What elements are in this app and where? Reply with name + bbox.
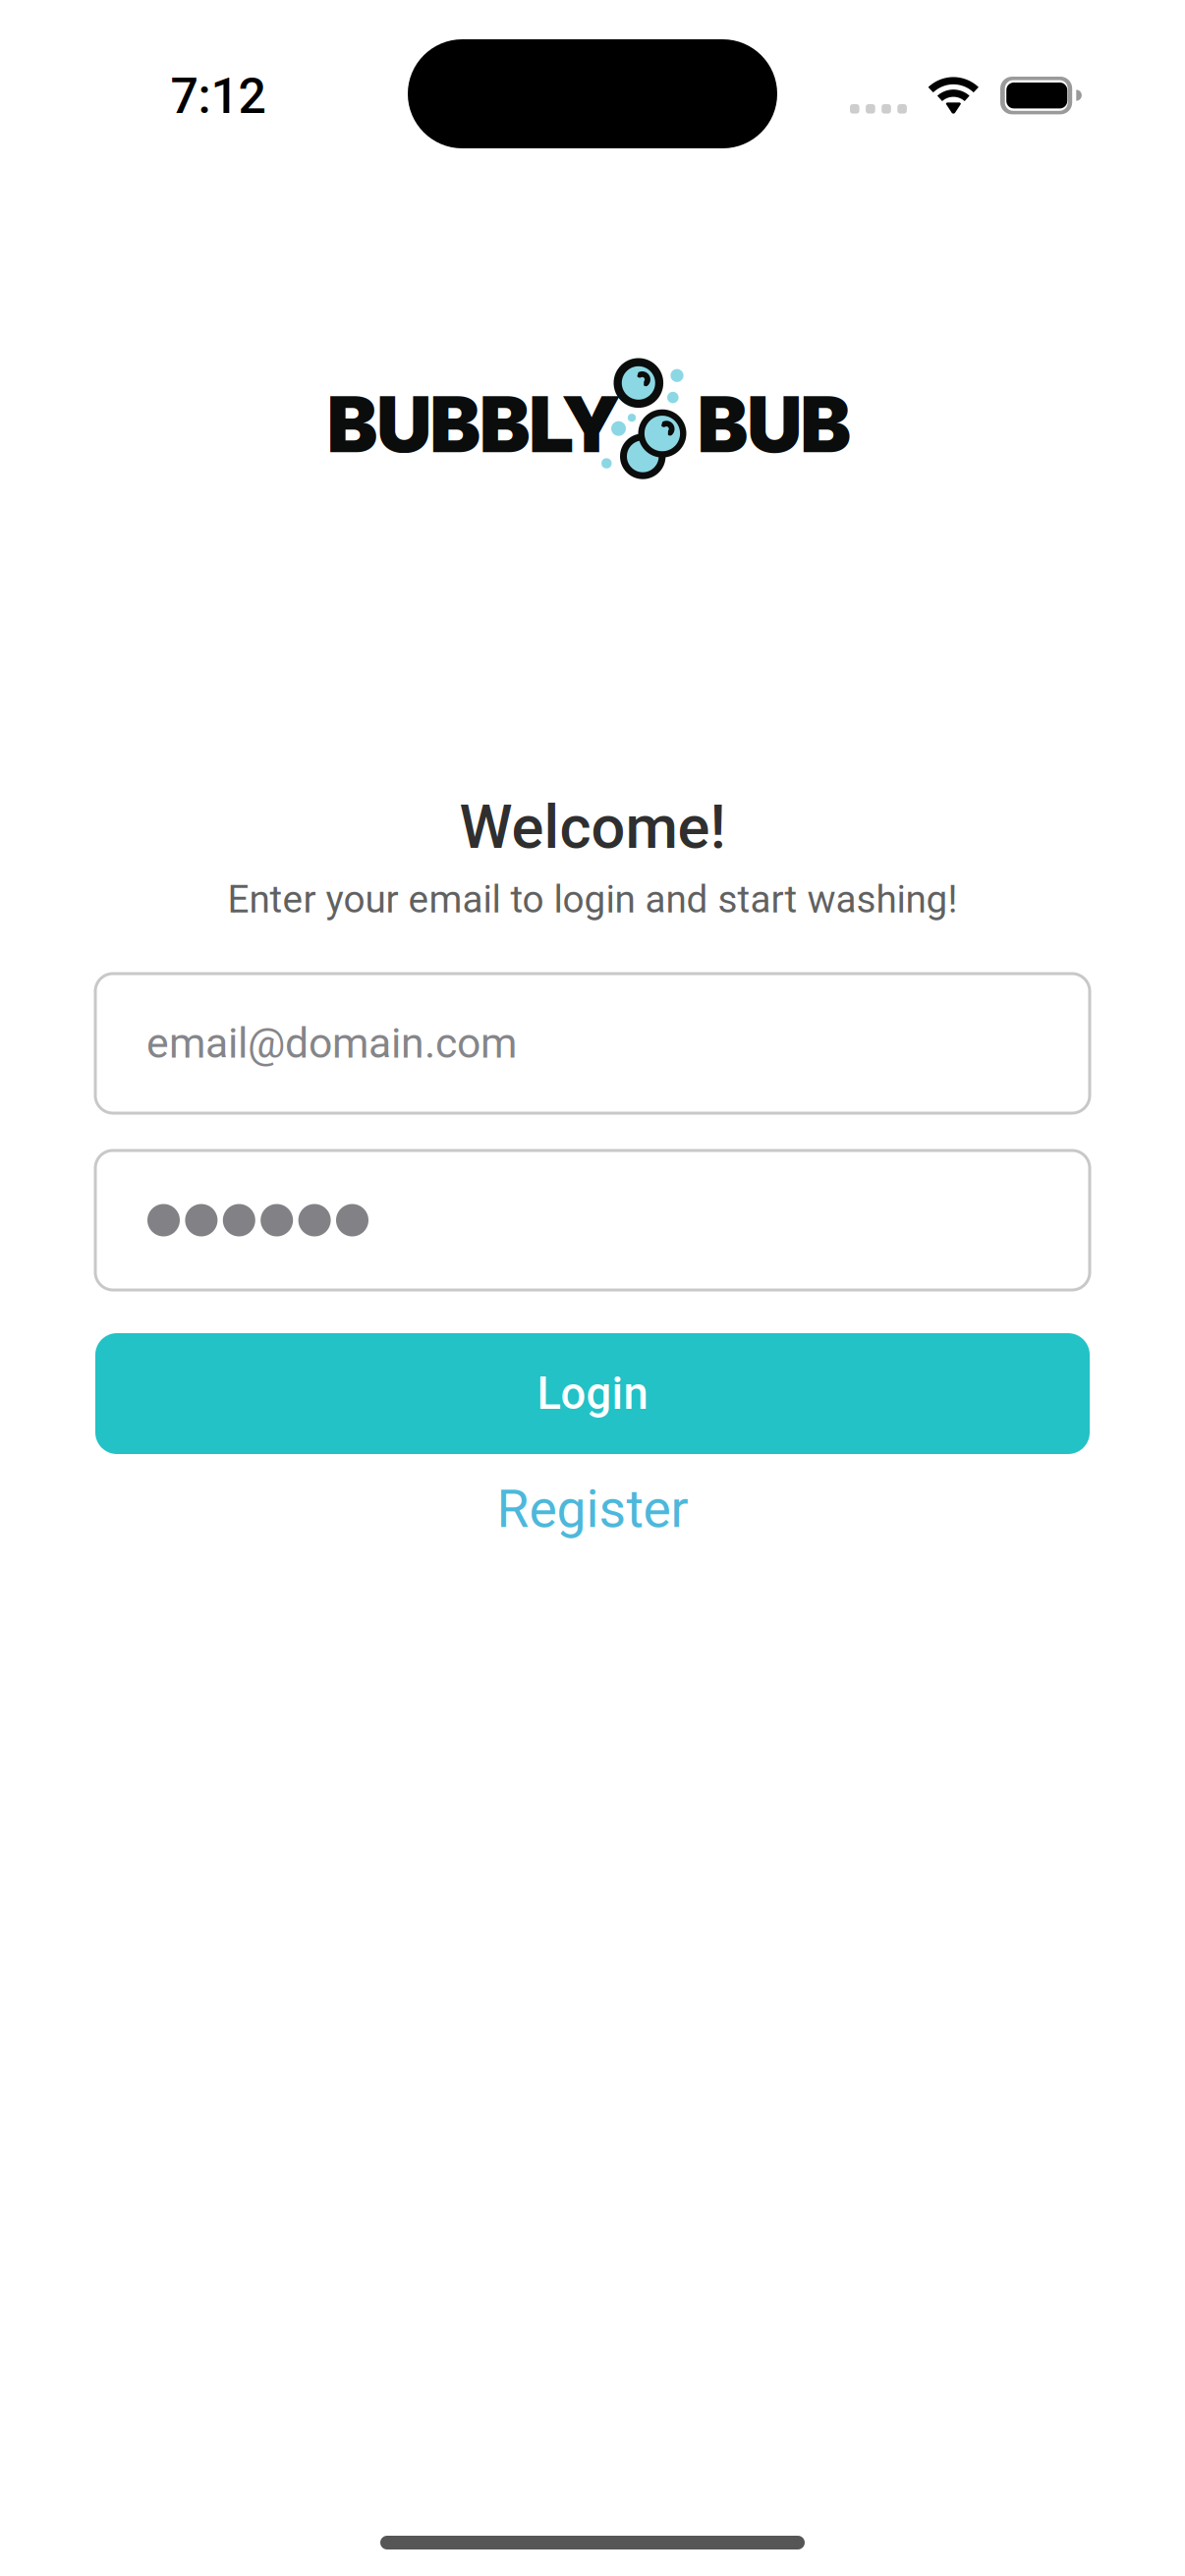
staticText: Enter your email to login and start wash… xyxy=(227,877,958,922)
staticText: BUB xyxy=(698,377,851,471)
button[interactable]: Login xyxy=(95,1333,1090,1454)
staticText: email@domain.com xyxy=(146,1019,517,1068)
staticText: Login xyxy=(537,1367,648,1420)
button[interactable]: Register xyxy=(95,1479,1090,1540)
staticText: BUBBLY xyxy=(327,377,619,471)
staticText: 7:12 xyxy=(170,67,266,125)
staticText: Register xyxy=(497,1478,688,1540)
staticText: Welcome! xyxy=(459,792,726,862)
